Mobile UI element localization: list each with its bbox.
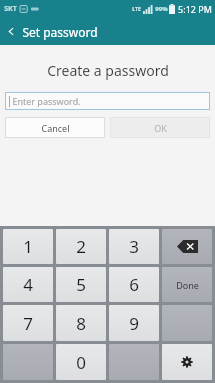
button[interactable]: Enter password. xyxy=(5,92,210,110)
button[interactable]: Back xyxy=(0,18,104,45)
button[interactable]: OK xyxy=(110,117,210,138)
staticText: 2 xyxy=(76,235,86,258)
staticText: 3 xyxy=(129,235,139,258)
staticText: Cancel xyxy=(41,122,70,134)
button[interactable] xyxy=(3,344,53,380)
button[interactable]: 3 xyxy=(109,229,159,264)
button[interactable]: 5 xyxy=(56,267,106,302)
staticText: Enter password. xyxy=(12,95,81,107)
button[interactable]: 1 xyxy=(3,229,53,264)
staticText: 5:12 PM xyxy=(178,3,212,15)
button[interactable]: 7 xyxy=(3,305,53,341)
button[interactable]: Cancel xyxy=(5,117,105,138)
other: Back xyxy=(7,27,16,36)
staticText: 8 xyxy=(76,312,86,335)
staticText: Done xyxy=(176,279,199,291)
staticText: 5 xyxy=(76,273,86,296)
staticText: SKT xyxy=(4,4,17,14)
staticText: LTE xyxy=(132,6,141,13)
button[interactable]: 9 xyxy=(109,305,159,341)
staticText: Set password xyxy=(22,24,98,40)
button[interactable]: 0 xyxy=(56,344,106,380)
button[interactable] xyxy=(162,305,212,341)
button[interactable]: Backspace xyxy=(162,229,212,264)
staticText: 7 xyxy=(23,312,33,335)
button[interactable]: 4 xyxy=(3,267,53,302)
staticText: 6 xyxy=(129,273,139,296)
button[interactable]: 6 xyxy=(109,267,159,302)
staticText: OK xyxy=(154,122,167,134)
staticText: 4 xyxy=(23,273,33,296)
button[interactable]: Done xyxy=(162,267,212,302)
staticText: 9 xyxy=(129,312,139,335)
staticText: 99% xyxy=(155,5,168,13)
staticText: 0 xyxy=(76,351,86,374)
button[interactable] xyxy=(109,344,159,380)
staticText: 1 xyxy=(23,235,33,258)
button[interactable]: Keyboard settings xyxy=(162,344,212,380)
staticText: Create a password xyxy=(47,61,169,80)
button[interactable]: 2 xyxy=(56,229,106,264)
button[interactable]: 8 xyxy=(56,305,106,341)
